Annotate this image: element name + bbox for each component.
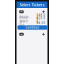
button[interactable]: Decrease <box>18 31 24 37</box>
staticText: $4.50 <box>36 21 45 25</box>
button[interactable]: Increase <box>40 9 46 15</box>
staticText: $48.00 <box>36 13 45 21</box>
staticText: $20.00 <box>36 16 45 24</box>
staticText: Continue <box>25 26 39 29</box>
staticText: Service fee <box>19 19 28 27</box>
button[interactable]: Increase <box>40 31 46 37</box>
button[interactable]: Continue <box>17 25 47 30</box>
staticText: Children <box>19 16 28 24</box>
button[interactable]: Decrease <box>18 9 24 15</box>
staticText: Select Tickets <box>19 2 44 7</box>
staticText: Adults <box>19 15 28 19</box>
